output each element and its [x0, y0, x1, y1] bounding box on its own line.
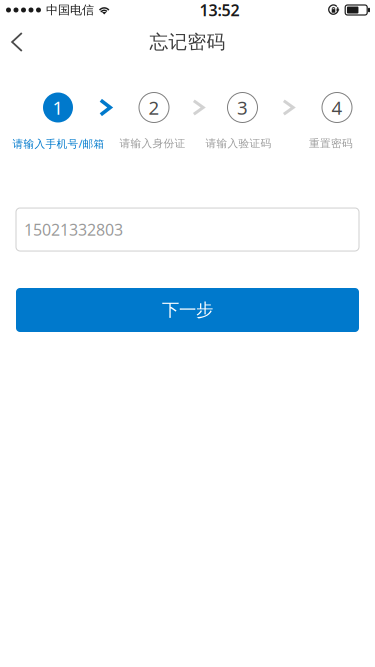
staticText: 请输入身份证	[119, 137, 185, 150]
staticText: 重置密码	[309, 137, 353, 150]
staticText: 请输入手机号/邮箱	[12, 136, 104, 151]
staticText: 中国电信	[46, 3, 94, 17]
staticText: 忘记密码	[149, 30, 225, 53]
staticText: 15021332803	[24, 219, 123, 240]
staticText: 2	[148, 95, 159, 120]
staticText: 1	[52, 95, 63, 120]
button[interactable]: Back	[0, 20, 34, 64]
staticText: 请输入验证码	[205, 137, 271, 150]
staticText: 13:52	[200, 0, 240, 21]
staticText: 下一步	[162, 299, 213, 321]
staticText: 4	[331, 95, 342, 120]
staticText: 3	[237, 95, 248, 120]
button[interactable]: 下一步	[16, 288, 359, 332]
